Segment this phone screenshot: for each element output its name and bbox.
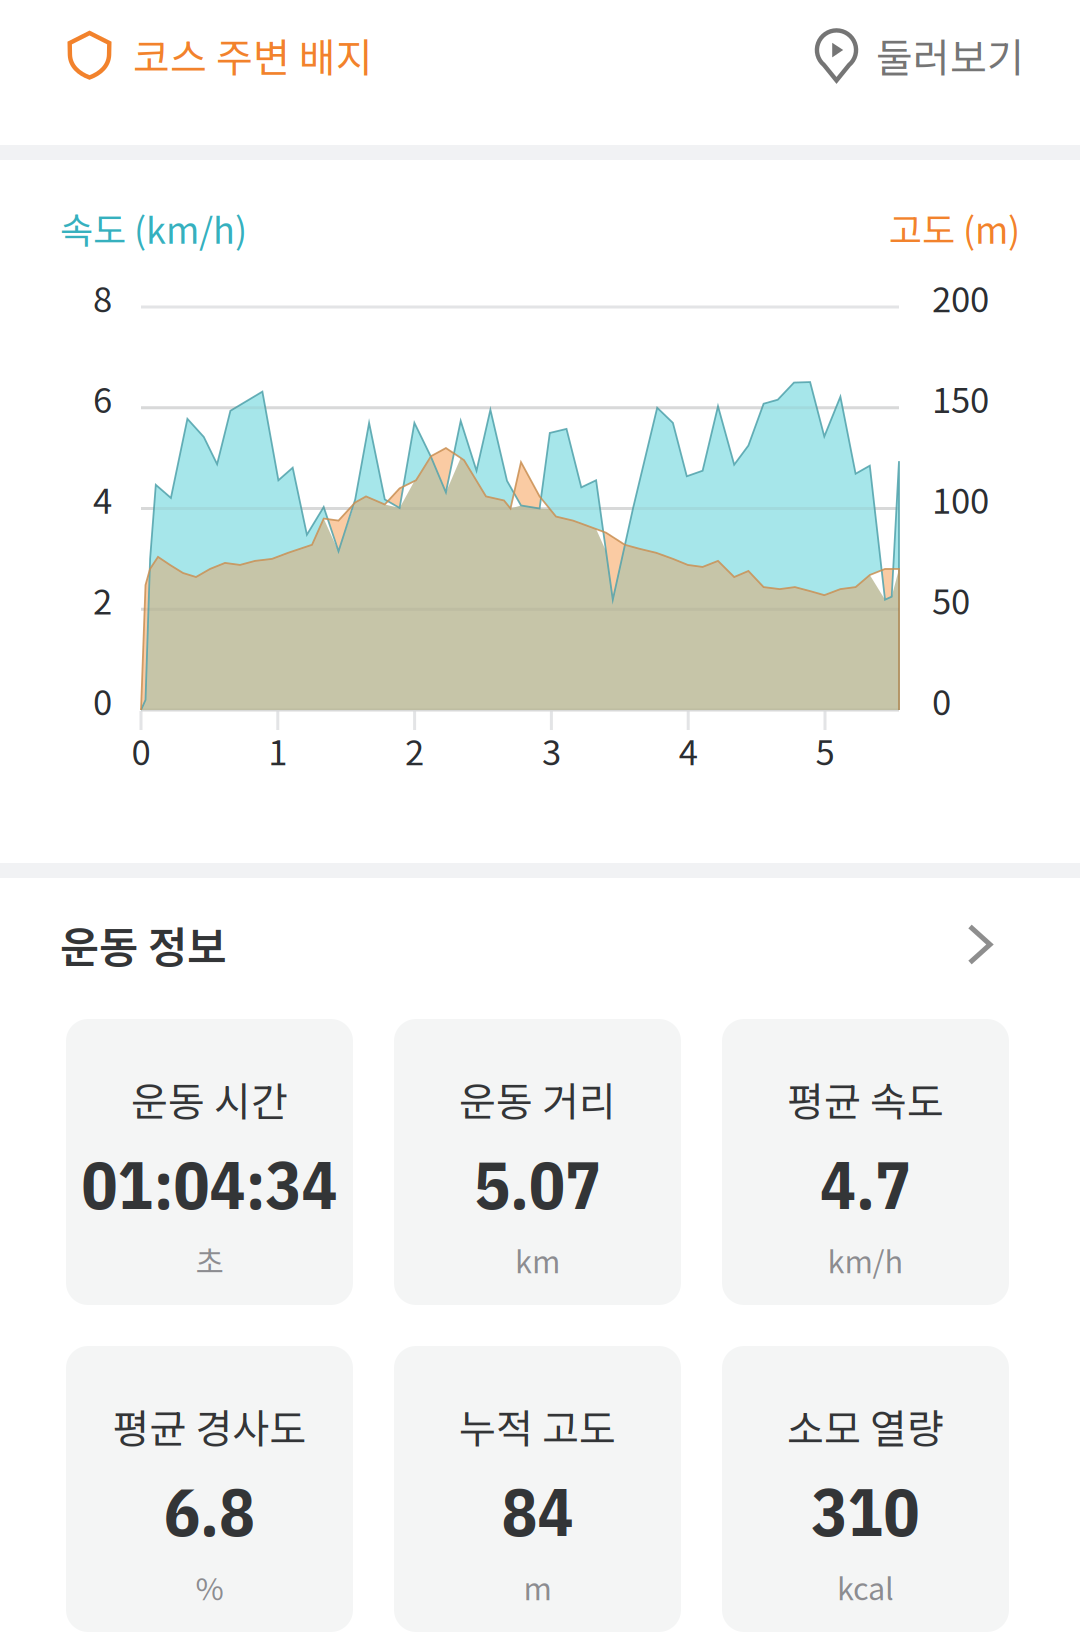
staticText: 6 bbox=[93, 373, 112, 423]
staticText: 5 bbox=[815, 725, 834, 775]
staticText: km/h bbox=[827, 1238, 903, 1282]
button[interactable]: 운동 정보 bbox=[0, 878, 1080, 1019]
staticText: 3 bbox=[542, 725, 561, 775]
staticText: 0 bbox=[93, 675, 112, 725]
staticText: 4 bbox=[93, 473, 112, 524]
staticText: 운동 거리 bbox=[459, 1070, 616, 1128]
staticText: 고도 (m) bbox=[889, 202, 1020, 254]
staticText: 2 bbox=[405, 725, 424, 775]
staticText: % bbox=[195, 1565, 223, 1609]
staticText: 0 bbox=[932, 675, 951, 725]
staticText: 속도 (km/h) bbox=[60, 202, 247, 254]
staticText: 0 bbox=[131, 725, 150, 775]
staticText: 4.7 bbox=[820, 1141, 911, 1227]
staticText: kcal bbox=[837, 1565, 894, 1609]
staticText: 200 bbox=[932, 272, 989, 322]
staticText: 운동 정보 bbox=[60, 914, 226, 975]
staticText: 소모 열량 bbox=[787, 1397, 944, 1455]
staticText: 평균 경사도 bbox=[112, 1397, 306, 1455]
staticText: 1 bbox=[268, 725, 287, 775]
staticText: 100 bbox=[932, 473, 989, 524]
staticText: 8 bbox=[93, 272, 112, 322]
staticText: 50 bbox=[932, 574, 970, 624]
staticText: km bbox=[515, 1238, 560, 1282]
staticText: 310 bbox=[811, 1468, 919, 1554]
staticText: 84 bbox=[501, 1468, 573, 1554]
staticText: 5.07 bbox=[474, 1141, 601, 1227]
staticText: 6.8 bbox=[164, 1468, 255, 1554]
staticText: 초 bbox=[195, 1238, 223, 1282]
staticText: 평균 속도 bbox=[787, 1070, 944, 1128]
staticText: 운동 시간 bbox=[131, 1070, 288, 1128]
staticText: 둘러보기 bbox=[876, 26, 1024, 84]
button[interactable]: 둘러보기 bbox=[815, 8, 1080, 102]
staticText: 4 bbox=[679, 725, 698, 775]
staticText: m bbox=[523, 1565, 551, 1609]
staticText: 코스 주변 배지 bbox=[133, 26, 373, 84]
staticText: 누적 고도 bbox=[459, 1397, 616, 1455]
staticText: 2 bbox=[93, 574, 112, 624]
button[interactable]: 코스 주변 배지 bbox=[0, 8, 373, 102]
staticText: 150 bbox=[932, 373, 989, 423]
staticText: 01:04:34 bbox=[81, 1141, 337, 1227]
